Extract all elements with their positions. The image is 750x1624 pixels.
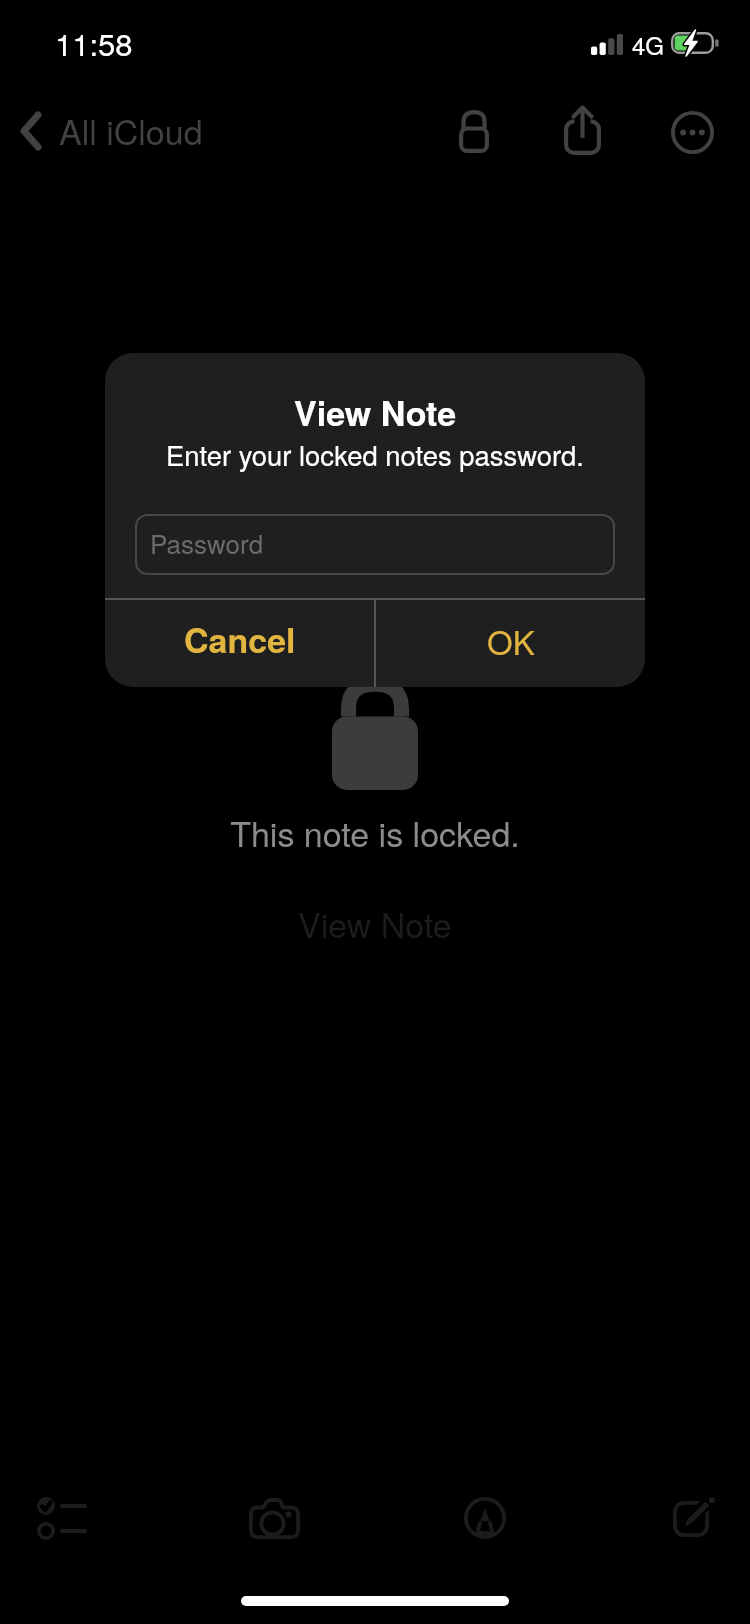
button[interactable]: Share [548, 97, 616, 165]
button[interactable]: Password [135, 514, 615, 575]
button[interactable]: All iCloud [8, 100, 217, 161]
button[interactable]: Cancel [105, 600, 374, 687]
button[interactable]: Camera [234, 1478, 314, 1558]
staticText: All iCloud [59, 106, 203, 155]
staticText: View Note [298, 899, 452, 948]
staticText: Cancel [184, 615, 296, 664]
staticText: Enter your locked notes password. [166, 435, 584, 474]
button[interactable]: More options [658, 98, 726, 166]
staticText: Password [150, 524, 264, 561]
button[interactable]: Checklist [21, 1478, 101, 1558]
button[interactable]: OK [376, 600, 645, 687]
button[interactable]: Markup [445, 1478, 525, 1558]
staticText: OK [487, 617, 535, 664]
button[interactable]: View Note [270, 887, 480, 960]
staticText: This note is locked. [230, 808, 520, 857]
button[interactable]: Lock note [440, 97, 508, 165]
button[interactable]: New note [654, 1476, 734, 1556]
staticText: 4G [632, 27, 665, 61]
staticText: View Note [294, 388, 457, 437]
staticText: 11:58 [55, 20, 133, 64]
